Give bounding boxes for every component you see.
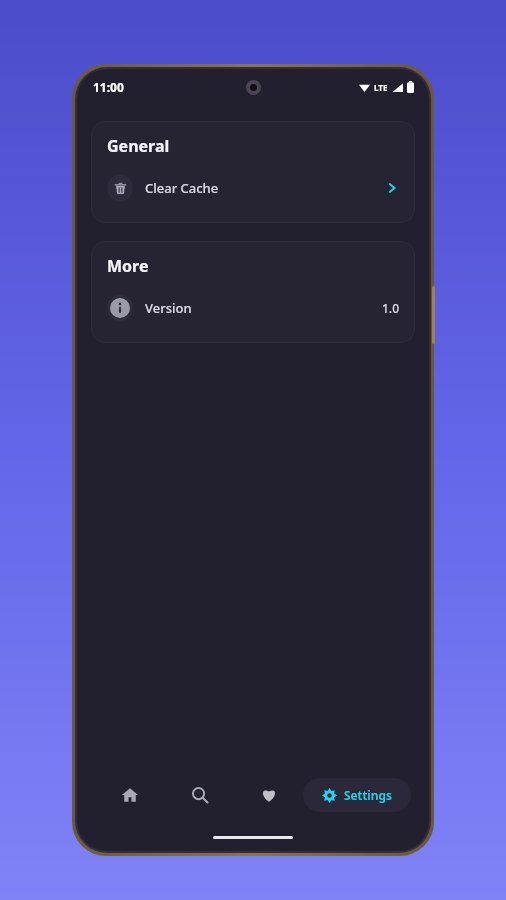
button[interactable]: Clear Cache bbox=[91, 167, 415, 209]
staticText: More bbox=[107, 255, 149, 277]
button[interactable]: Home bbox=[95, 773, 165, 817]
staticText: Version bbox=[145, 299, 382, 317]
staticText: General bbox=[107, 135, 170, 157]
button[interactable]: Settings bbox=[303, 778, 411, 812]
button[interactable]: Search bbox=[165, 773, 234, 817]
button[interactable]: Favorites bbox=[234, 773, 303, 817]
staticText: 11:00 bbox=[93, 79, 124, 95]
staticText: 1.0 bbox=[382, 300, 399, 316]
button[interactable]: Version bbox=[91, 287, 415, 329]
staticText: Settings bbox=[344, 787, 392, 803]
staticText: Clear Cache bbox=[145, 179, 385, 197]
staticText: LTE bbox=[374, 82, 388, 93]
